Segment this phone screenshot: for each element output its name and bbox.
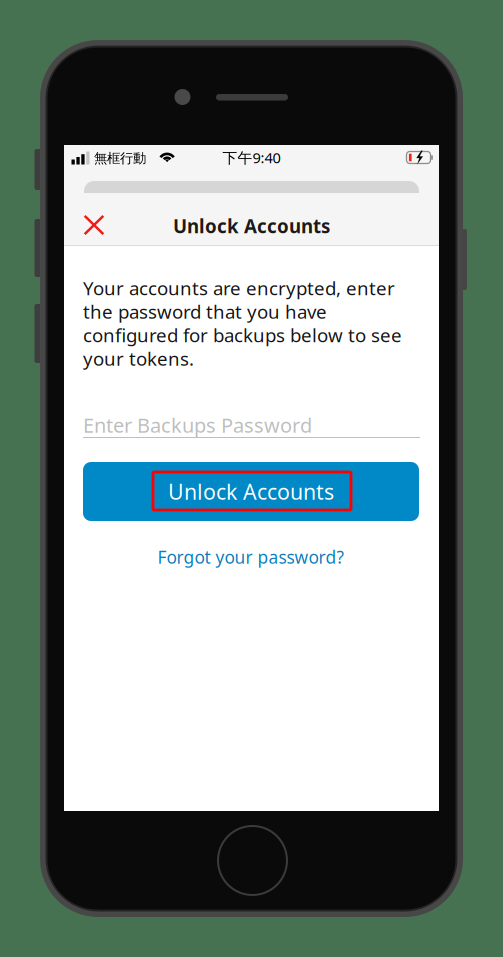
- button[interactable]: Close: [72, 203, 116, 247]
- staticText: Enter Backups Password: [83, 412, 312, 438]
- staticText: 無框行動: [94, 150, 146, 166]
- staticText: configured for backups below to see: [83, 323, 402, 347]
- staticText: the password that you have: [83, 299, 327, 324]
- button[interactable]: Unlock Accounts: [83, 462, 419, 521]
- staticText: Forgot your password?: [157, 545, 344, 568]
- staticText: Unlock Accounts: [173, 214, 330, 238]
- staticText: Unlock Accounts: [168, 477, 334, 506]
- button[interactable]: Forgot your password?: [83, 543, 419, 571]
- staticText: Your accounts are encrypted, enter: [83, 276, 395, 300]
- staticText: your tokens.: [83, 346, 194, 371]
- staticText: 下午9:40: [222, 148, 280, 167]
